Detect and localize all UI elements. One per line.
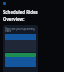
staticText: Scheduled Rides: [3, 9, 38, 15]
button[interactable]: App icon: [3, 2, 6, 5]
button[interactable]: [5, 53, 36, 57]
staticText: Overview:: [3, 16, 25, 22]
button[interactable]: [5, 62, 36, 67]
button[interactable]: [5, 57, 36, 62]
staticText: Here are your upcoming rides: [5, 27, 38, 33]
